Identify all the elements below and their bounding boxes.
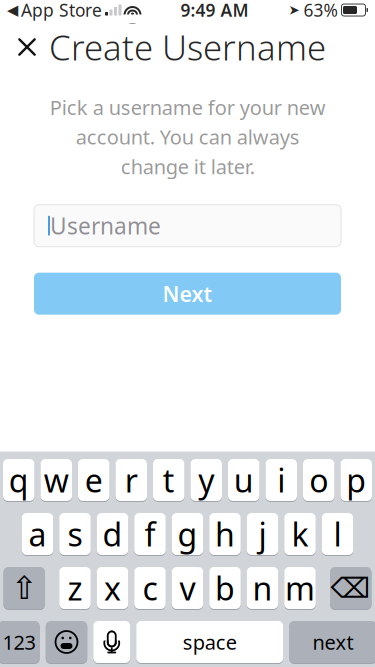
button[interactable]: g bbox=[172, 512, 203, 555]
button[interactable]: p bbox=[340, 458, 372, 501]
staticText: f bbox=[144, 513, 155, 555]
button[interactable]: Shift bbox=[3, 566, 45, 609]
button[interactable]: u bbox=[228, 458, 259, 501]
staticText: i bbox=[277, 459, 285, 501]
staticText: 63% bbox=[303, 0, 337, 21]
staticText: App Store bbox=[21, 0, 102, 21]
button[interactable]: Dictation bbox=[93, 620, 130, 663]
staticText: ⌫ bbox=[331, 572, 371, 604]
button[interactable]: m bbox=[284, 566, 316, 609]
button[interactable]: w bbox=[40, 458, 72, 501]
button[interactable]: k bbox=[284, 512, 316, 555]
button[interactable]: l bbox=[322, 512, 353, 555]
button[interactable]: x bbox=[97, 566, 128, 609]
staticText: l bbox=[333, 513, 341, 555]
staticText: ➤ bbox=[288, 2, 299, 17]
button[interactable]: next bbox=[289, 620, 375, 663]
button[interactable]: i bbox=[265, 458, 297, 501]
staticText: z bbox=[67, 567, 82, 609]
staticText: r bbox=[125, 459, 138, 501]
button[interactable]: t bbox=[153, 458, 184, 501]
button[interactable]: o bbox=[303, 458, 334, 501]
staticText: w bbox=[44, 459, 69, 501]
staticText: x bbox=[104, 567, 121, 609]
staticText: 123 bbox=[2, 629, 35, 655]
button[interactable]: Emoji bbox=[46, 620, 87, 663]
staticText: a bbox=[28, 513, 46, 555]
staticText: c bbox=[142, 567, 157, 609]
staticText: o bbox=[309, 459, 328, 501]
button[interactable]: Username bbox=[34, 205, 341, 247]
button[interactable]: j bbox=[247, 512, 278, 555]
staticText: v bbox=[179, 567, 195, 609]
button[interactable]: a bbox=[22, 512, 53, 555]
staticText: t bbox=[163, 459, 175, 501]
staticText: j bbox=[258, 513, 266, 555]
staticText: e bbox=[85, 459, 103, 501]
button[interactable]: b bbox=[209, 566, 241, 609]
button[interactable]: Next bbox=[34, 273, 341, 315]
staticText: Pick a username for your new account. Yo… bbox=[49, 94, 325, 180]
button[interactable]: h bbox=[209, 512, 241, 555]
button[interactable]: n bbox=[247, 566, 278, 609]
staticText: space bbox=[183, 629, 237, 655]
button[interactable]: r bbox=[115, 458, 147, 501]
staticText: b bbox=[215, 567, 235, 609]
button[interactable]: s bbox=[59, 512, 91, 555]
staticText: n bbox=[252, 567, 272, 609]
button[interactable]: Delete bbox=[330, 566, 371, 609]
staticText: s bbox=[67, 513, 82, 555]
staticText: p bbox=[346, 459, 366, 501]
button[interactable]: z bbox=[59, 566, 91, 609]
staticText: h bbox=[215, 513, 235, 555]
staticText: 9:49 AM bbox=[180, 0, 248, 21]
staticText: ⇧ bbox=[11, 570, 38, 606]
staticText: q bbox=[9, 459, 29, 501]
button[interactable]: space bbox=[136, 620, 283, 663]
staticText: m bbox=[285, 567, 315, 609]
staticText: Username bbox=[50, 211, 161, 241]
staticText: g bbox=[177, 513, 197, 555]
button[interactable]: y bbox=[190, 458, 222, 501]
button[interactable]: 123 bbox=[0, 620, 40, 663]
staticText: next bbox=[312, 629, 353, 655]
staticText: Create Username bbox=[49, 24, 326, 70]
button[interactable]: e bbox=[78, 458, 109, 501]
staticText: d bbox=[102, 513, 122, 555]
button[interactable]: f bbox=[134, 512, 166, 555]
staticText: Next bbox=[162, 279, 212, 308]
staticText: k bbox=[291, 513, 308, 555]
button[interactable]: v bbox=[172, 566, 203, 609]
staticText: y bbox=[198, 459, 214, 501]
staticText: ◀ bbox=[7, 2, 18, 18]
button[interactable]: q bbox=[3, 458, 34, 501]
button[interactable]: d bbox=[97, 512, 128, 555]
staticText: u bbox=[234, 459, 254, 501]
button[interactable]: Close bbox=[4, 26, 50, 68]
button[interactable]: c bbox=[134, 566, 166, 609]
